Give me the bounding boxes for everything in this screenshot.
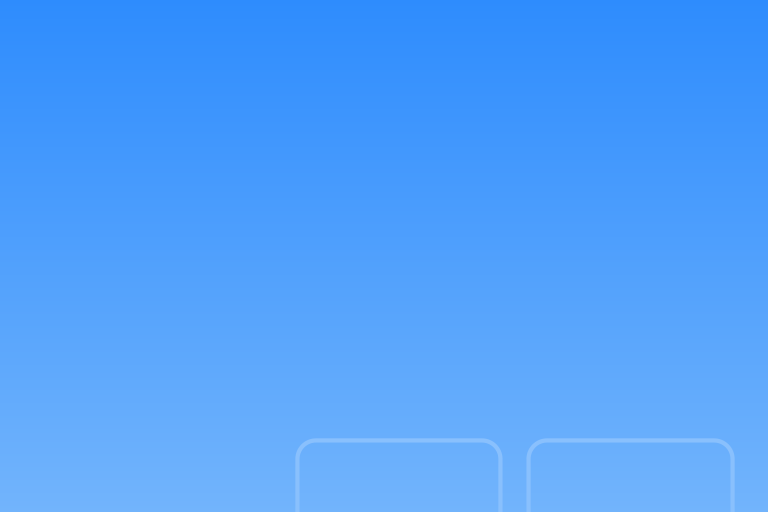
button[interactable]: Second card — [528, 440, 732, 512]
button[interactable]: First card — [297, 440, 500, 512]
